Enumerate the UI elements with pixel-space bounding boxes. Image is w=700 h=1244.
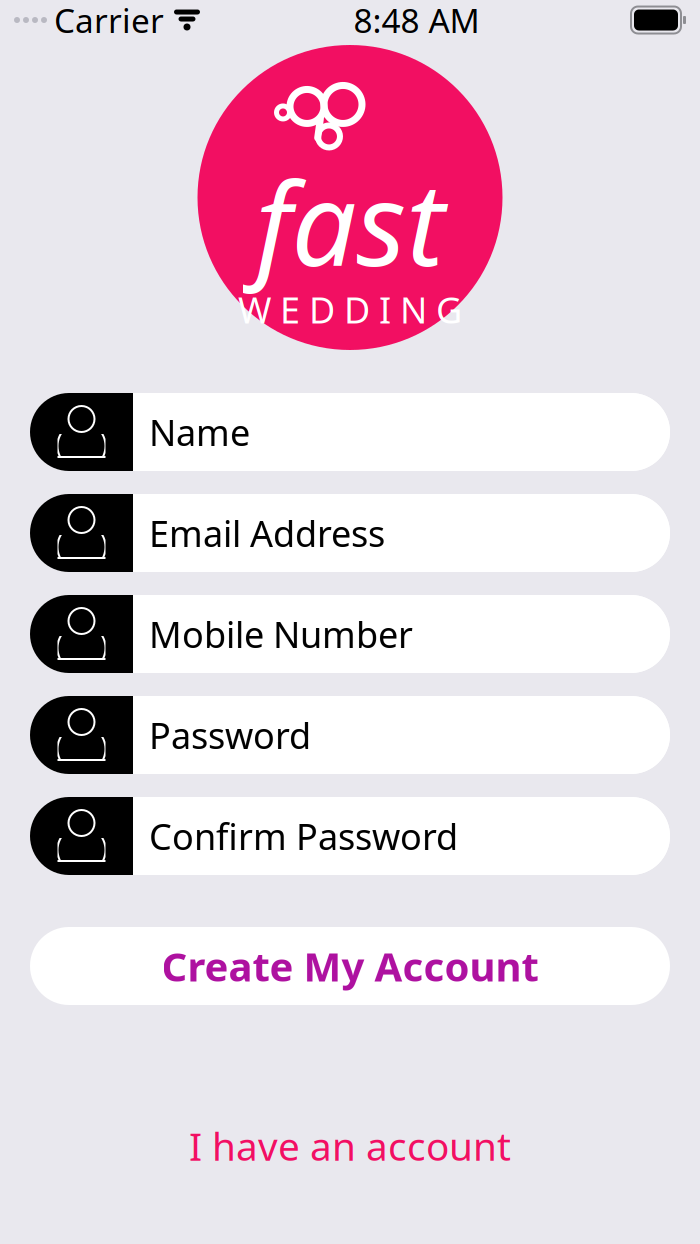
button[interactable]: Mobile Number xyxy=(30,595,670,673)
staticText: W E D D I N G xyxy=(238,286,462,333)
button[interactable]: Name xyxy=(30,393,670,471)
button[interactable]: Create My Account xyxy=(30,927,670,1005)
staticText: Email Address xyxy=(149,509,385,557)
staticText: Name xyxy=(149,408,250,456)
staticText: Password xyxy=(149,711,311,759)
staticText: Mobile Number xyxy=(149,610,413,658)
staticText: Create My Account xyxy=(161,939,538,992)
button[interactable]: Password xyxy=(30,696,670,774)
button[interactable]: Confirm Password xyxy=(30,797,670,875)
staticText: Confirm Password xyxy=(149,812,458,860)
staticText: I have an account xyxy=(189,1120,511,1171)
button[interactable]: I have an account xyxy=(169,1110,531,1181)
button[interactable]: Email Address xyxy=(30,494,670,572)
staticText: Carrier xyxy=(54,0,164,42)
staticText: 8:48 AM xyxy=(353,0,479,42)
staticText: fast xyxy=(255,145,444,298)
